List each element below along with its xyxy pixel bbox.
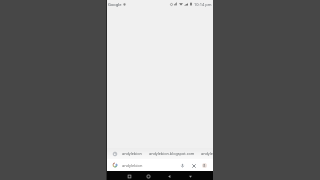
staticText: andylebion xyxy=(122,163,143,168)
button[interactable]: andylebion xyxy=(201,151,213,156)
button[interactable]: Hide keyboard xyxy=(186,171,195,180)
other: Google xyxy=(112,162,118,168)
button[interactable]: andylebion xyxy=(122,151,142,156)
button[interactable]: Clear xyxy=(190,162,197,169)
button[interactable]: Voice search xyxy=(179,162,186,169)
button[interactable]: Back xyxy=(165,171,174,180)
other: Recent search xyxy=(113,152,117,156)
staticText: Google xyxy=(108,2,122,7)
button[interactable]: Account xyxy=(201,162,208,169)
button[interactable]: andylebion.blogspot.com xyxy=(149,151,195,156)
button[interactable]: Recents xyxy=(125,171,134,180)
button[interactable]: Home xyxy=(144,171,153,180)
staticText: 10:14 pm xyxy=(194,2,212,7)
